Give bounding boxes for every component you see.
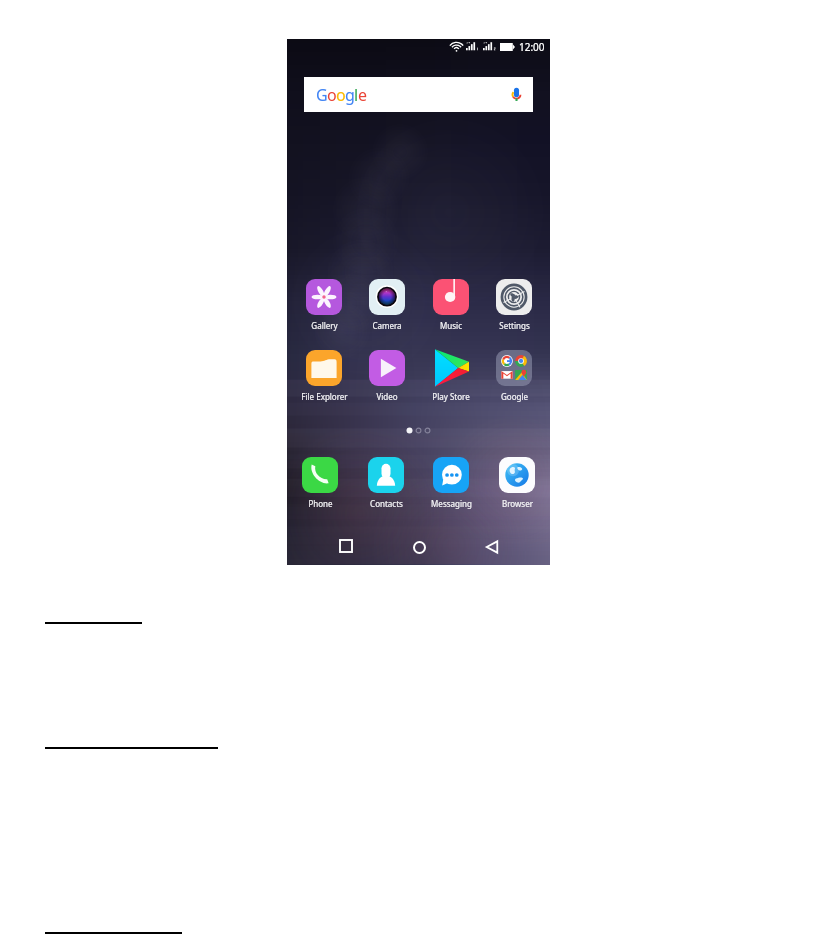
button[interactable]: Video bbox=[356, 350, 418, 402]
staticText: 12:00 bbox=[519, 40, 545, 54]
staticText: Contacts bbox=[370, 498, 403, 509]
button[interactable]: File Explorer bbox=[293, 350, 355, 402]
staticText: Music bbox=[440, 320, 462, 331]
button[interactable]: Browser bbox=[486, 457, 548, 509]
button[interactable]: Settings bbox=[483, 279, 545, 331]
button[interactable]: Messaging bbox=[420, 457, 482, 509]
button[interactable]: Contacts bbox=[355, 457, 417, 509]
button[interactable]: Back bbox=[479, 534, 505, 560]
staticText: G bbox=[316, 84, 327, 106]
staticText: Google bbox=[501, 391, 528, 402]
staticText: o bbox=[336, 84, 345, 106]
staticText: Messaging bbox=[431, 498, 472, 509]
button[interactable]: Music bbox=[420, 279, 482, 331]
button[interactable]: Gallery bbox=[293, 279, 355, 331]
staticText: Gallery bbox=[311, 320, 338, 331]
staticText: File Explorer bbox=[301, 391, 348, 402]
button[interactable]: Home bbox=[406, 534, 432, 560]
button[interactable]: Phone bbox=[289, 457, 351, 509]
staticText: l bbox=[354, 84, 358, 106]
staticText: o bbox=[327, 84, 336, 106]
staticText: Browser bbox=[502, 498, 533, 509]
button[interactable]: Camera bbox=[356, 279, 418, 331]
button[interactable]: Recent apps bbox=[333, 533, 359, 559]
staticText: Play Store bbox=[432, 391, 470, 402]
staticText: Phone bbox=[308, 498, 333, 509]
staticText: Video bbox=[376, 391, 398, 402]
staticText: e bbox=[358, 84, 367, 106]
staticText: Settings bbox=[499, 320, 530, 331]
button[interactable]: Play Store bbox=[420, 350, 482, 402]
staticText: g bbox=[345, 84, 354, 106]
staticText: Camera bbox=[372, 320, 402, 331]
button[interactable]: Google bbox=[483, 350, 545, 402]
button[interactable]: G bbox=[304, 77, 533, 112]
